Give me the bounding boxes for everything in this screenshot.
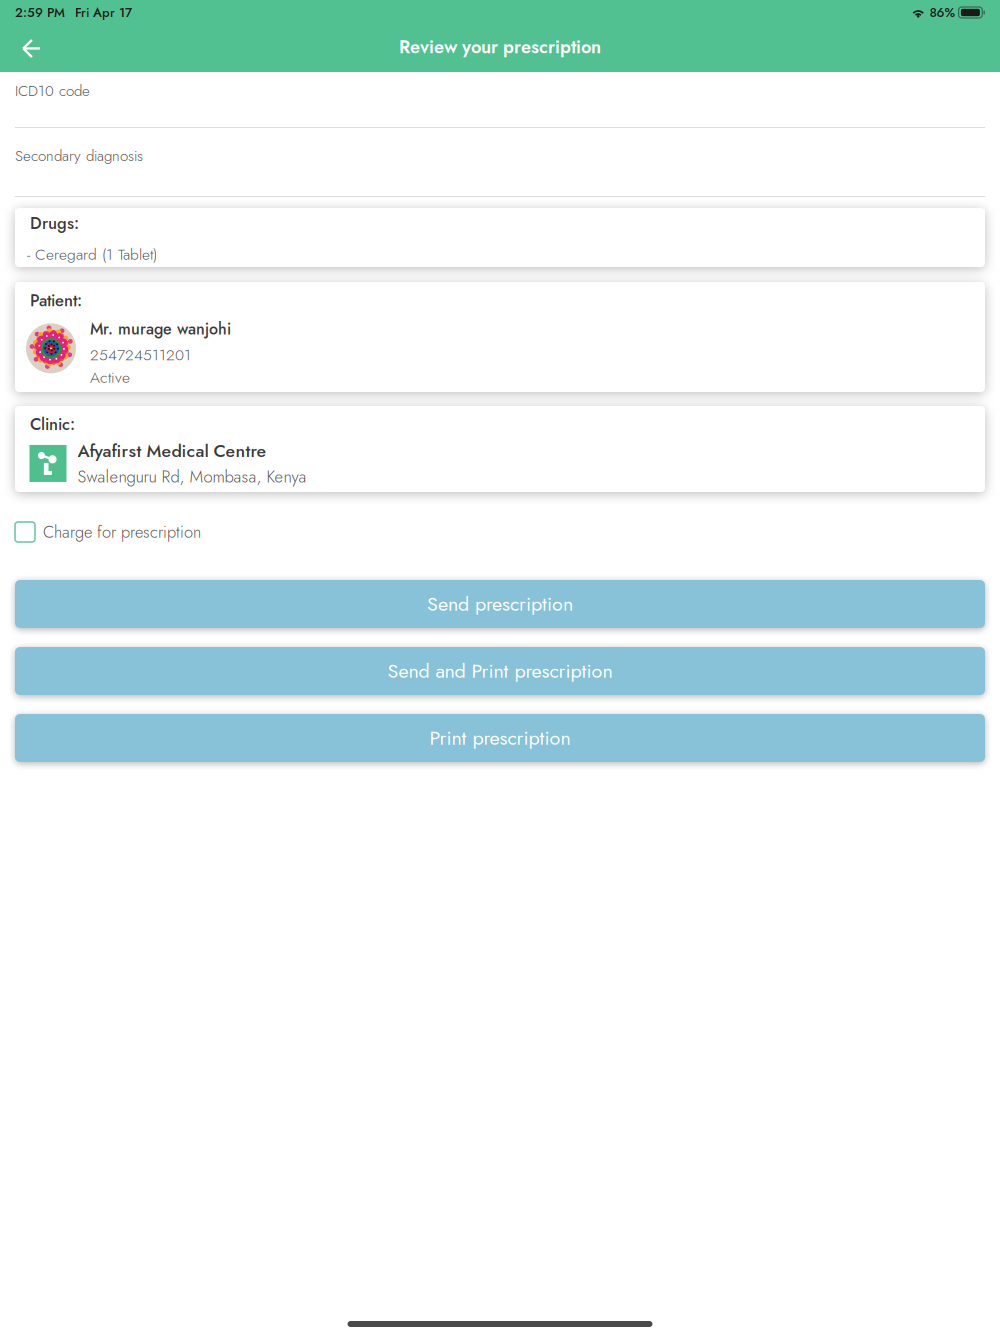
staticText: ICD10 code [15,80,90,102]
staticText: Drugs: [30,211,79,235]
staticText: Clinic: [30,412,75,436]
staticText: Send and Print prescription [387,657,612,685]
staticText: 2:59 PM [15,3,65,22]
staticText: 254724511201 [90,343,191,366]
staticText: 86% [930,3,956,22]
staticText: Swalenguru Rd, Mombasa, Kenya [77,465,306,489]
button[interactable]: Back [0,29,57,68]
button[interactable]: Send and Print prescription [0,647,1000,695]
staticText: Fri Apr 17 [75,3,132,22]
staticText: Active [90,366,130,388]
staticText: - Ceregard (1 Tablet) [27,243,157,266]
staticText: Charge for prescription [43,520,201,544]
staticText: Review your prescription [399,34,601,60]
staticText: Afyafirst Medical Centre [77,438,266,464]
button[interactable]: Print prescription [0,714,1000,762]
staticText: Secondary diagnosis [15,145,143,167]
staticText: Send prescription [427,590,573,618]
button[interactable]: Send prescription [0,580,1000,628]
staticText: Patient: [30,288,82,312]
staticText: Print prescription [429,724,570,752]
staticText: Mr. murage wanjohi [90,317,231,340]
button[interactable]: Charge for prescription [0,516,1000,548]
